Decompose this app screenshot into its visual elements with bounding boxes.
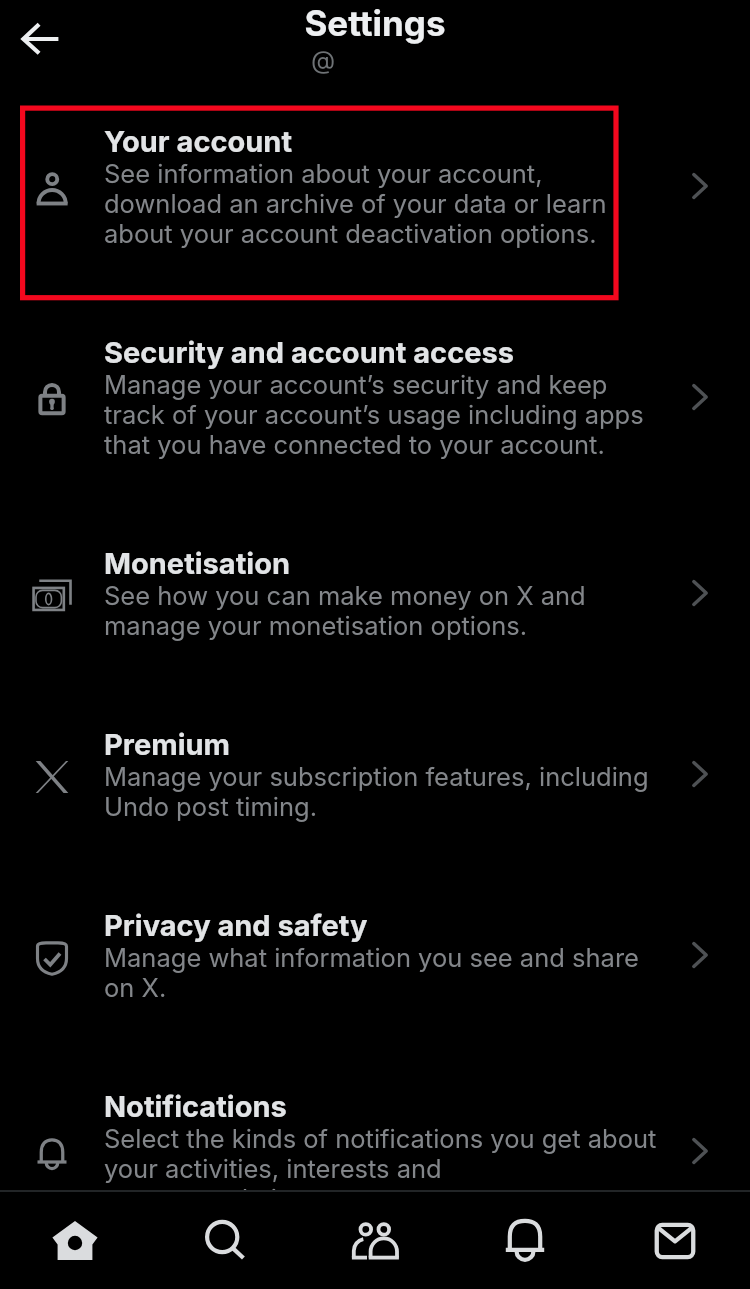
staticText: Select the kinds of notifications you ge… <box>104 1124 660 1190</box>
staticText: Security and account access <box>104 334 514 370</box>
staticText: See information about your account, down… <box>104 159 660 249</box>
staticText: @ <box>311 47 336 75</box>
staticText: Premium <box>104 726 231 762</box>
button[interactable]: Monetisation <box>0 512 750 693</box>
staticText: Settings <box>304 7 446 43</box>
staticText: Manage your account’s security and keep … <box>104 370 660 460</box>
button[interactable]: Search <box>150 1192 300 1289</box>
button[interactable]: Notifications <box>0 1055 750 1190</box>
button[interactable]: Security and account access <box>0 301 750 512</box>
button[interactable]: Home <box>0 1192 150 1289</box>
staticText: Manage what information you see and shar… <box>104 943 660 1003</box>
staticText: Monetisation <box>104 545 291 581</box>
button[interactable]: Privacy and safety <box>0 874 750 1055</box>
staticText: Privacy and safety <box>104 907 368 943</box>
button[interactable]: Back <box>9 7 73 71</box>
staticText: See how you can make money on X and mana… <box>104 581 660 641</box>
staticText: Notifications <box>104 1088 287 1124</box>
staticText: Your account <box>104 123 293 159</box>
button[interactable]: Premium <box>0 693 750 874</box>
button[interactable]: Communities <box>300 1192 450 1289</box>
button[interactable]: Messages <box>600 1192 750 1289</box>
staticText: Manage your subscription features, inclu… <box>104 762 660 822</box>
button[interactable]: Your account <box>0 90 750 301</box>
button[interactable]: Notifications <box>450 1192 600 1289</box>
